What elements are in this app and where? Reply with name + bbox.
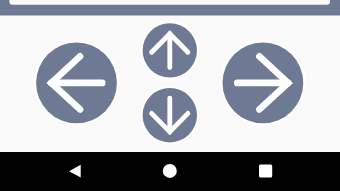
button[interactable]: Home xyxy=(145,152,195,191)
button[interactable]: Recent apps xyxy=(240,152,290,191)
button[interactable]: Move right xyxy=(220,40,305,125)
button[interactable]: Move up xyxy=(140,21,199,80)
button[interactable]: Move down xyxy=(140,86,199,145)
button[interactable]: Back xyxy=(50,152,100,191)
button[interactable]: Move left xyxy=(34,40,119,125)
